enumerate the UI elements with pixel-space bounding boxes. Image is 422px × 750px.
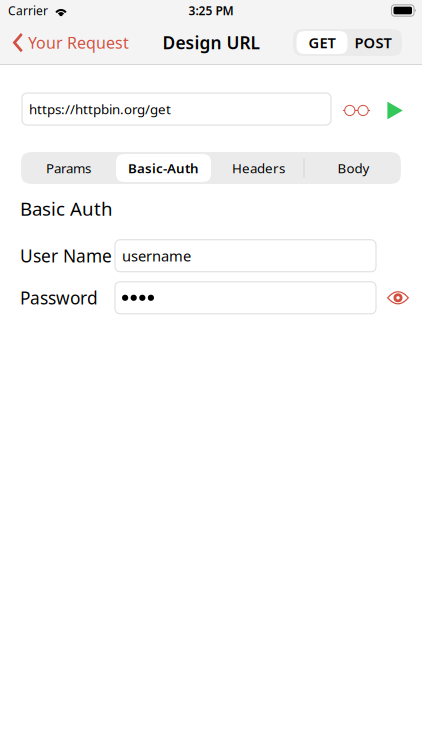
staticText: Design URL (162, 31, 259, 54)
button[interactable]: Body (306, 154, 401, 182)
button[interactable]: Preview (336, 93, 377, 125)
button[interactable]: Your Request (12, 32, 129, 53)
staticText: Basic Auth (20, 196, 113, 221)
button[interactable]: POST (347, 31, 398, 54)
button[interactable]: GET (296, 31, 347, 54)
button[interactable]: Params (21, 154, 116, 182)
staticText: Body (337, 159, 369, 177)
staticText: Carrier (8, 2, 48, 18)
button[interactable]: Send request (380, 93, 410, 125)
button[interactable]: Basic-Auth (116, 154, 211, 182)
staticText: Password (20, 286, 98, 309)
staticText: Params (46, 159, 91, 177)
staticText: GET (308, 33, 335, 52)
staticText: Headers (232, 159, 285, 177)
staticText: POST (354, 33, 391, 52)
staticText: User Name (20, 244, 112, 267)
staticText: https://httpbin.org/get (29, 100, 171, 118)
staticText: Your Request (28, 32, 129, 53)
staticText: Basic-Auth (128, 159, 199, 177)
staticText: username (122, 246, 191, 266)
button[interactable]: Headers (211, 154, 306, 182)
button[interactable]: Show password (385, 285, 411, 311)
staticText: 3:25 PM (188, 2, 233, 18)
